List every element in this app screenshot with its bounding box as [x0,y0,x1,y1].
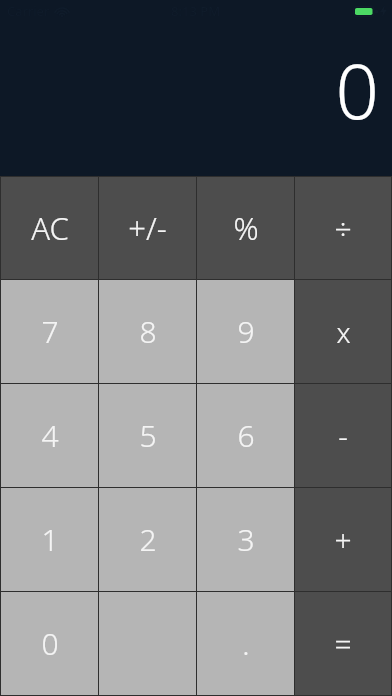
button[interactable]: 4 [1,384,98,487]
button[interactable]: AC [1,177,98,279]
staticText: x [336,313,351,351]
button[interactable]: - [295,384,391,487]
button[interactable]: 5 [99,384,196,487]
staticText: . [242,623,250,664]
staticText: = [334,623,352,664]
button[interactable]: 0 [1,592,98,695]
button[interactable]: ÷ [295,177,391,279]
staticText: % [233,207,259,249]
staticText: 0 [335,38,379,142]
staticText: 7 [41,311,59,352]
button[interactable]: = [295,592,391,695]
staticText: 1 [41,519,59,560]
staticText: 8 [139,311,157,352]
staticText: ÷ [334,208,352,249]
staticText: - [338,415,348,456]
button[interactable]: 6 [197,384,294,487]
button[interactable]: + [295,488,391,591]
staticText: +/- [128,207,167,249]
button[interactable]: % [197,177,294,279]
button[interactable]: 9 [197,280,294,383]
button[interactable]: 2 [99,488,196,591]
button[interactable]: x [295,280,391,383]
staticText: 4 [41,415,59,456]
staticText: 6 [237,415,255,456]
button[interactable]: 7 [1,280,98,383]
staticText: + [334,519,352,560]
staticText: 3 [237,519,255,560]
button[interactable]: +/- [99,177,196,279]
staticText: 5 [139,415,157,456]
staticText: 2 [139,519,157,560]
staticText: 9 [237,311,255,352]
staticText: 0 [41,623,59,664]
staticText: AC [31,207,69,249]
button[interactable]: 1 [1,488,98,591]
button[interactable]: 3 [197,488,294,591]
button[interactable]: 8 [99,280,196,383]
